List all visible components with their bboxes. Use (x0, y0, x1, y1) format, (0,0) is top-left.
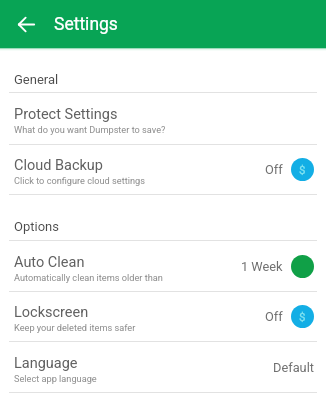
staticText: Options (14, 219, 59, 234)
staticText: Settings (54, 14, 118, 35)
button[interactable]: Auto clean enabled (291, 255, 314, 278)
staticText: Click to configure cloud settings (14, 175, 145, 186)
staticText: What do you want Dumpster to save? (14, 124, 166, 135)
staticText: General (14, 72, 59, 87)
staticText: Lockscreen (14, 304, 89, 321)
button[interactable]: Lockscreen is a premium feature (291, 305, 314, 328)
button[interactable]: Lockscreen (0, 292, 326, 341)
button[interactable]: Protect Settings (0, 93, 326, 144)
staticText: 1 Week (241, 259, 283, 274)
staticText: Default (273, 360, 314, 375)
staticText: Select app language (14, 373, 97, 384)
staticText: Cloud Backup (14, 157, 103, 174)
staticText: $ (299, 163, 306, 176)
button[interactable]: Back (12, 10, 40, 38)
staticText: Off (265, 162, 283, 177)
button[interactable]: Auto Clean (0, 241, 326, 291)
staticText: $ (299, 310, 306, 323)
staticText: Automatically clean items older than (14, 272, 163, 283)
staticText: Off (265, 309, 283, 324)
staticText: Keep your deleted items safer (14, 322, 136, 333)
staticText: Auto Clean (14, 254, 85, 271)
staticText: Protect Settings (14, 106, 118, 123)
button[interactable]: Cloud backup is a premium feature (291, 158, 314, 181)
button[interactable]: Language (0, 342, 326, 392)
staticText: Language (14, 355, 78, 372)
button[interactable]: Cloud Backup (0, 145, 326, 194)
